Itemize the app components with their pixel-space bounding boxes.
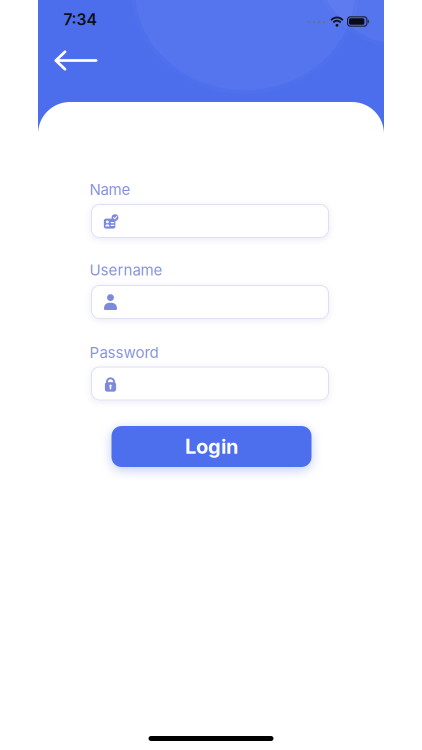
staticText: Login <box>185 434 238 459</box>
button[interactable]: Username <box>91 285 329 319</box>
staticText: 7:34 <box>63 10 96 29</box>
button[interactable]: Password <box>91 366 329 400</box>
staticText: Username <box>89 261 162 279</box>
button[interactable]: Back <box>48 40 104 80</box>
button[interactable]: Login <box>111 426 311 467</box>
button[interactable]: Name <box>91 204 329 238</box>
staticText: Password <box>89 343 158 361</box>
staticText: Name <box>89 180 130 198</box>
